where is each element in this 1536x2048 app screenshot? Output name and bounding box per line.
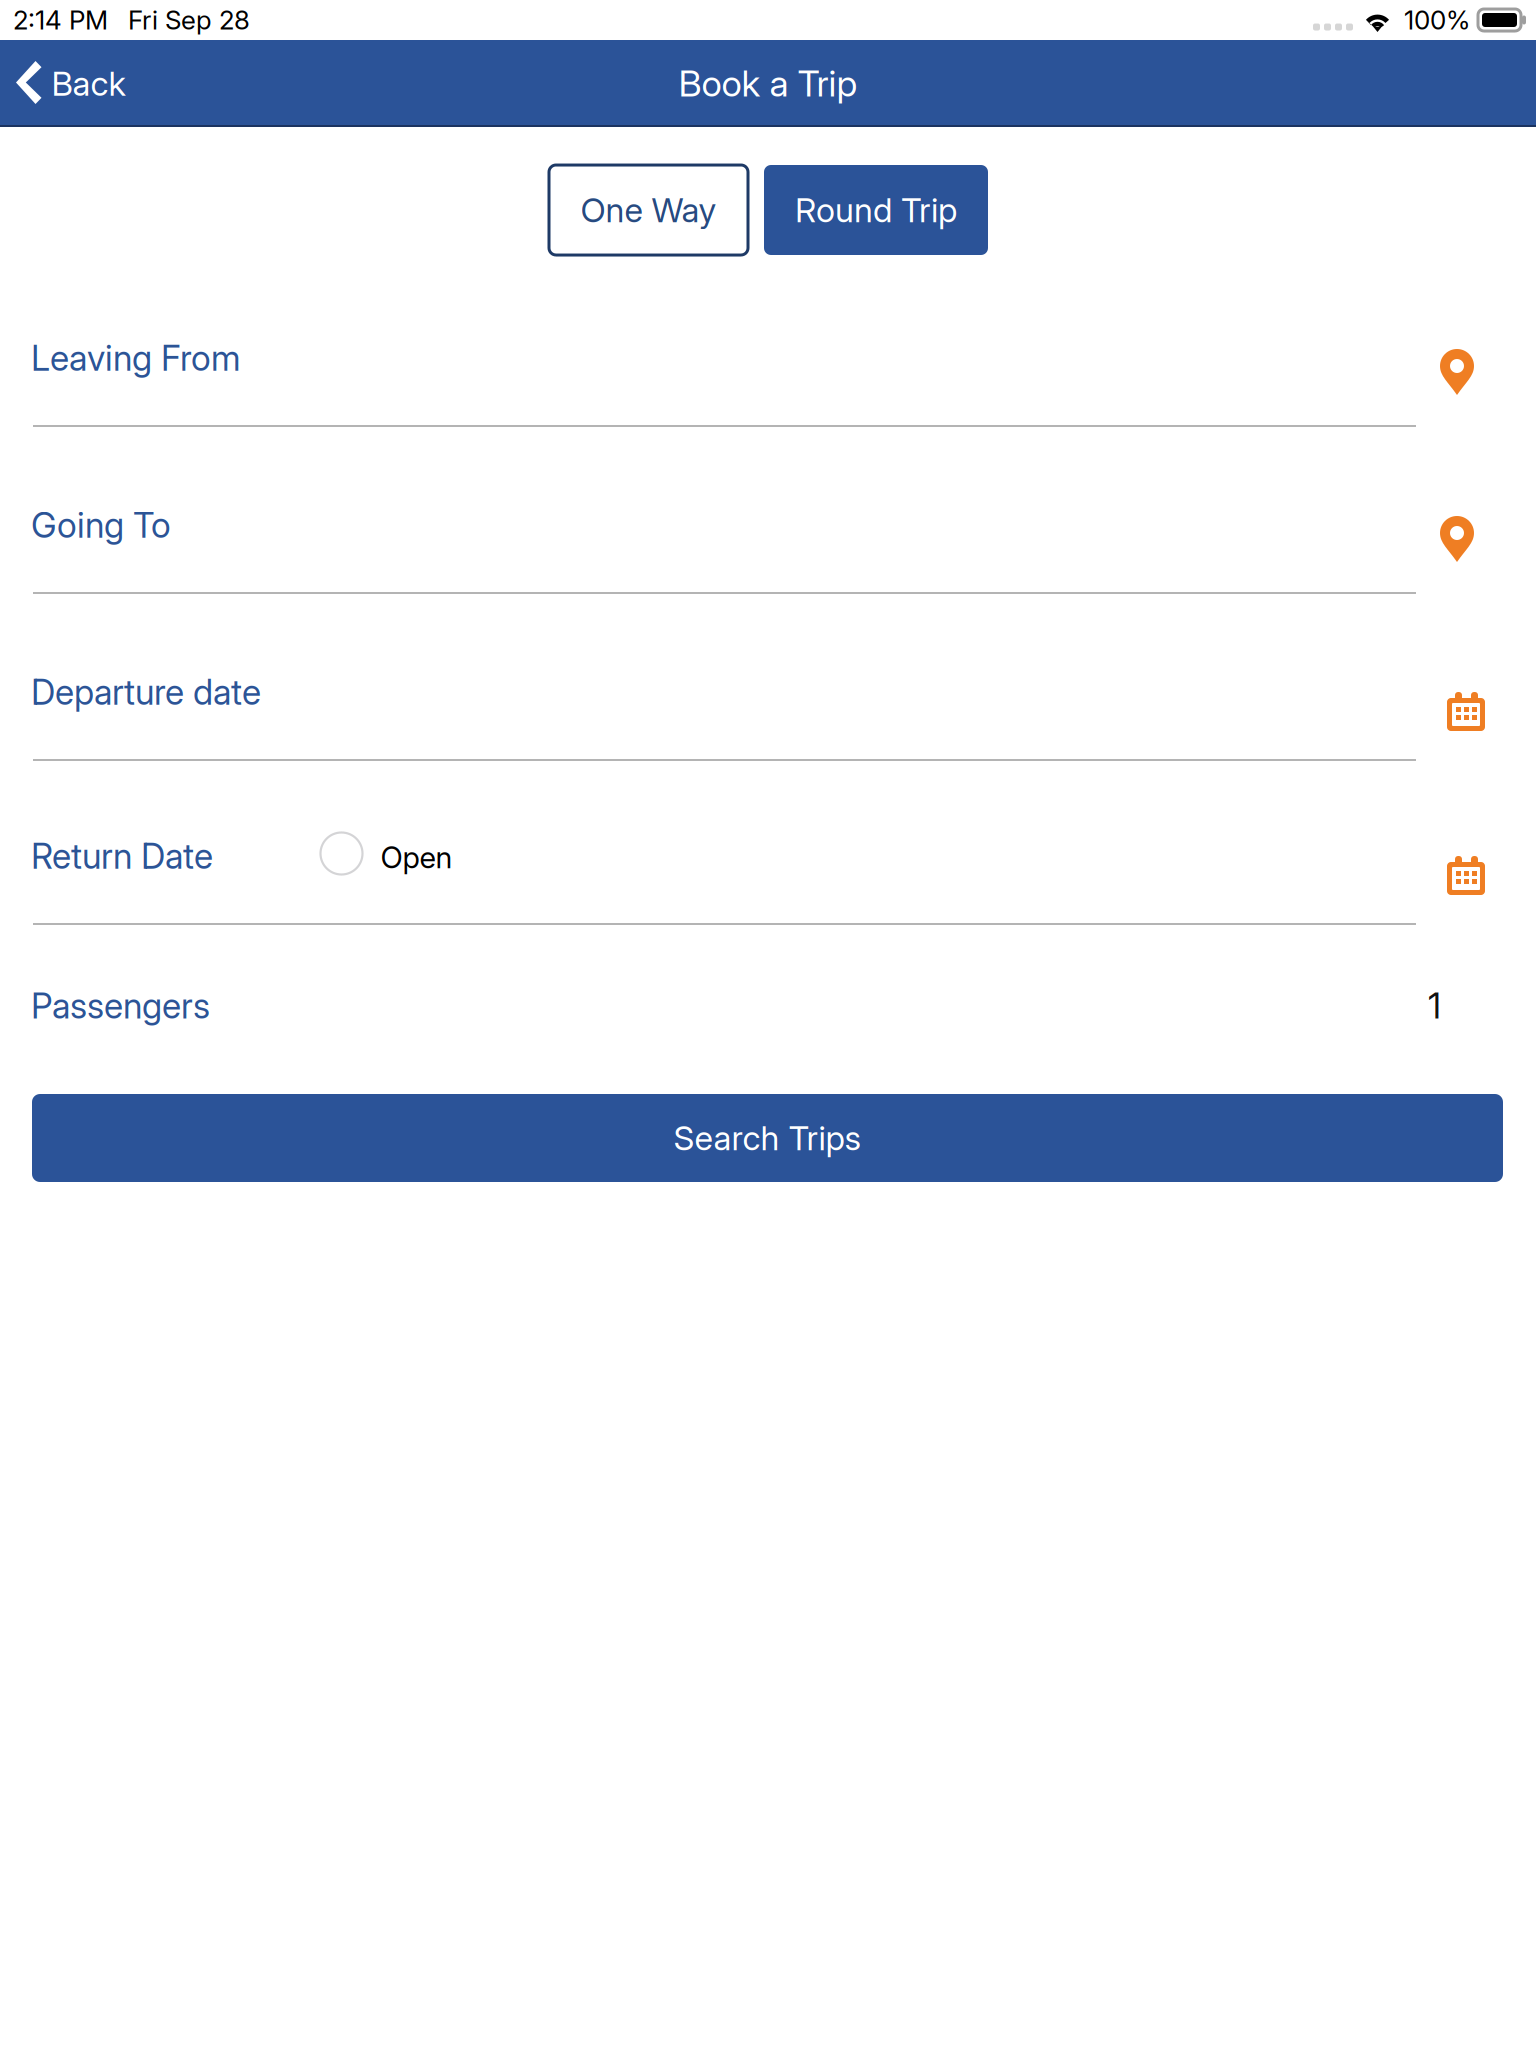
button[interactable]: Going To <box>0 427 1536 594</box>
staticText: Open <box>380 840 452 875</box>
button[interactable]: Passengers <box>31 985 1441 1027</box>
button[interactable]: One Way <box>549 165 748 255</box>
button[interactable]: Departure date <box>0 594 1536 761</box>
staticText: Book a Trip <box>678 62 857 105</box>
staticText: Return Date <box>31 835 213 877</box>
staticText: 100% <box>1404 4 1470 36</box>
button[interactable]: Pick departure date <box>1447 692 1485 731</box>
staticText: Going To <box>31 504 171 546</box>
button[interactable]: Open <box>320 832 452 874</box>
staticText: Search Trips <box>673 1118 861 1158</box>
staticText: Fri Sep 28 <box>128 4 250 36</box>
staticText: Back <box>51 63 125 104</box>
staticText: One Way <box>580 190 716 230</box>
staticText: Round Trip <box>795 190 957 230</box>
staticText: Departure date <box>31 671 261 713</box>
button[interactable]: Return Date <box>0 761 1536 925</box>
staticText: Passengers <box>31 985 210 1027</box>
staticText: 1 <box>1428 985 1441 1027</box>
button[interactable]: Pick destination <box>1440 515 1474 562</box>
button[interactable]: Pick departure location <box>1440 348 1474 395</box>
staticText: 2:14 PM <box>13 4 108 36</box>
button[interactable]: Search Trips <box>32 1094 1503 1182</box>
button[interactable]: Round Trip <box>764 165 988 255</box>
button[interactable]: Back <box>0 40 145 127</box>
staticText: Leaving From <box>31 337 241 379</box>
button[interactable]: Leaving From <box>0 261 1536 427</box>
button[interactable]: Pick return date <box>1447 856 1485 895</box>
